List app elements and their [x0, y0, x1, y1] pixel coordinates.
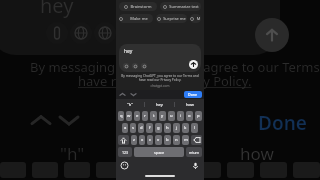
staticText: z [133, 137, 135, 143]
staticText: o [188, 113, 191, 119]
staticText: x [141, 137, 144, 143]
staticText: Make me smile [125, 16, 153, 21]
button[interactable]: Dictate [192, 162, 199, 169]
staticText: c [149, 137, 152, 143]
staticText: space [154, 150, 165, 155]
staticText: h [166, 125, 169, 131]
staticText: m [184, 137, 188, 143]
button[interactable]: Done [184, 91, 202, 98]
staticText: Brainstorm [130, 4, 152, 9]
staticText: "h" [60, 142, 85, 165]
staticText: a [124, 125, 127, 131]
staticText: v [157, 137, 160, 143]
staticText: By messaging ChatGPT, you agree to our T… [120, 74, 200, 82]
button[interactable]: d [138, 123, 144, 133]
button[interactable]: Make me smile [119, 14, 153, 23]
button[interactable]: j [173, 123, 180, 133]
button[interactable]: g [155, 123, 162, 133]
button[interactable]: z [131, 135, 137, 145]
staticText: d [140, 125, 143, 131]
button[interactable]: w [126, 111, 132, 121]
button[interactable]: o [186, 111, 193, 121]
staticText: e [136, 113, 139, 119]
button[interactable]: hey [119, 44, 201, 72]
staticText: l [194, 125, 196, 131]
staticText: By messaging ChatGPT, you agree to our T… [30, 58, 320, 76]
button[interactable]: y [159, 111, 166, 121]
button[interactable]: u [168, 111, 175, 121]
button[interactable]: "h" [116, 99, 144, 109]
button[interactable]: x [139, 135, 145, 145]
button[interactable]: Voice [141, 63, 147, 69]
staticText: Done [258, 110, 307, 136]
staticText: Surprise me [163, 16, 186, 21]
button[interactable]: 123 [118, 147, 132, 157]
staticText: f [149, 125, 151, 131]
button[interactable]: More [190, 14, 201, 23]
staticText: b [166, 137, 169, 143]
staticText: k [184, 125, 187, 131]
staticText: w [127, 113, 131, 119]
button[interactable]: Surprise me [156, 14, 187, 23]
staticText: how [240, 142, 274, 165]
button[interactable]: c [147, 135, 153, 145]
staticText: More [196, 16, 201, 21]
staticText: i [180, 113, 182, 119]
staticText: hey [40, 0, 74, 19]
button[interactable]: n [173, 135, 180, 145]
staticText: hey [124, 48, 133, 55]
button[interactable]: Send [189, 60, 198, 69]
button[interactable]: a [122, 123, 128, 133]
button[interactable]: Web search [94, 22, 116, 44]
button[interactable]: Next [130, 91, 137, 98]
staticText: j [176, 125, 178, 131]
staticText: 123 [122, 150, 129, 155]
button[interactable]: f [146, 123, 153, 133]
button[interactable]: k [182, 123, 189, 133]
button[interactable]: Previous [119, 91, 126, 98]
staticText: "h" [127, 102, 133, 107]
button[interactable]: hey [145, 99, 174, 109]
button[interactable]: return [186, 147, 202, 157]
button[interactable]: p [195, 111, 202, 121]
button[interactable]: Backspace [191, 135, 202, 145]
button[interactable]: Brainstorm [119, 2, 157, 11]
staticText: Done [188, 92, 198, 97]
button[interactable]: Send [255, 18, 289, 52]
button[interactable]: s [130, 123, 136, 133]
button[interactable]: Attach [123, 63, 129, 69]
button[interactable]: m [182, 135, 189, 145]
button[interactable]: q [118, 111, 124, 121]
staticText: r [144, 113, 146, 119]
button[interactable]: t [150, 111, 157, 121]
button[interactable]: Web search [70, 22, 92, 44]
button[interactable]: space [134, 147, 184, 157]
button[interactable]: Shift [118, 135, 129, 145]
staticText: y [161, 113, 164, 119]
button[interactable]: l [191, 123, 198, 133]
staticText: p [197, 113, 200, 119]
staticText: how [186, 102, 194, 107]
staticText: hey [156, 102, 163, 107]
button[interactable]: v [155, 135, 162, 145]
staticText: chatgpt.com [116, 84, 204, 88]
staticText: q [120, 113, 123, 119]
staticText: s [132, 125, 135, 131]
button[interactable]: Emoji [121, 162, 128, 169]
button[interactable]: b [164, 135, 171, 145]
staticText: t [153, 113, 155, 119]
button[interactable]: Summarize text [160, 2, 201, 11]
staticText: u [170, 113, 173, 119]
button[interactable]: Attach [46, 22, 68, 44]
button[interactable]: e [134, 111, 140, 121]
button[interactable]: r [142, 111, 148, 121]
button[interactable]: i [177, 111, 184, 121]
staticText: g [157, 125, 160, 131]
button[interactable]: how [175, 99, 204, 109]
staticText: Summarize text [169, 4, 199, 9]
button[interactable]: Web search [132, 63, 138, 69]
staticText: return [189, 150, 200, 155]
staticText: n [175, 137, 178, 143]
staticText: have read our Privacy Policy. [78, 72, 252, 90]
button[interactable]: h [164, 123, 171, 133]
